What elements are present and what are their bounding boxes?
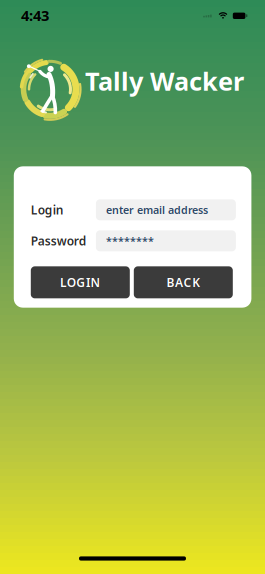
staticText: Password: [31, 233, 87, 249]
staticText: BACK: [166, 274, 200, 290]
staticText: Tally Wacker: [85, 64, 244, 98]
staticText: ********: [106, 234, 154, 248]
button[interactable]: Password: [96, 230, 236, 251]
staticText: 4:43: [21, 6, 49, 25]
staticText: LOGIN: [60, 274, 100, 290]
button[interactable]: Email address: [96, 199, 236, 220]
staticText: Login: [31, 202, 64, 218]
staticText: enter email address: [106, 203, 208, 217]
button[interactable]: BACK: [134, 266, 233, 298]
button[interactable]: LOGIN: [31, 266, 130, 298]
